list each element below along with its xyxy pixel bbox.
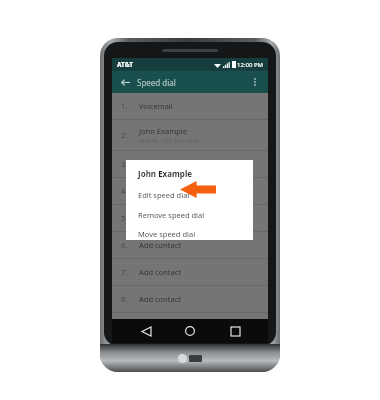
staticText: Add contact [139, 213, 181, 223]
button[interactable]: Back [135, 320, 157, 342]
button[interactable]: Home [179, 320, 201, 342]
button[interactable]: 3. [112, 151, 268, 177]
button[interactable]: 8. [112, 286, 268, 312]
staticText: Edit speed dial [138, 190, 190, 200]
staticText: Add contact [139, 159, 181, 169]
button[interactable]: 1. [112, 93, 268, 119]
staticText: Remove speed dial [138, 210, 205, 220]
staticText: 3. [121, 159, 128, 169]
staticText: 4. [121, 186, 128, 196]
button[interactable]: Back [118, 75, 132, 89]
staticText: 8. [121, 294, 128, 304]
staticText: Move speed dial [138, 229, 196, 239]
staticText: Add contact [139, 186, 181, 196]
button[interactable]: 5. [112, 205, 268, 231]
button[interactable]: 2. [112, 120, 268, 150]
staticText: Speed dial [137, 77, 176, 88]
button[interactable]: Recent apps [224, 320, 246, 342]
staticText: Add contact [139, 267, 181, 277]
staticText: 2. [121, 130, 128, 140]
button[interactable]: Remove speed dial [126, 208, 253, 222]
staticText: 6. [121, 240, 128, 250]
button[interactable]: 4. [112, 178, 268, 204]
staticText: Add contact [139, 240, 181, 250]
staticText: John Example [139, 126, 187, 136]
staticText: 7. [121, 267, 128, 277]
button[interactable]: More options [248, 75, 262, 89]
staticText: 5. [121, 213, 128, 223]
staticText: Mobile 555-555-5555 [139, 137, 200, 145]
staticText: Voicemail [139, 101, 173, 111]
staticText: Add contact [139, 294, 181, 304]
staticText: John Example [138, 168, 193, 179]
button[interactable]: 7. [112, 259, 268, 285]
staticText: 1. [121, 101, 128, 111]
staticText: AT&T [117, 60, 133, 69]
staticText: 12:00 PM [237, 61, 263, 69]
button[interactable]: Move speed dial [126, 228, 253, 240]
button[interactable]: 6. [112, 232, 268, 258]
button[interactable]: Edit speed dial [126, 188, 253, 202]
